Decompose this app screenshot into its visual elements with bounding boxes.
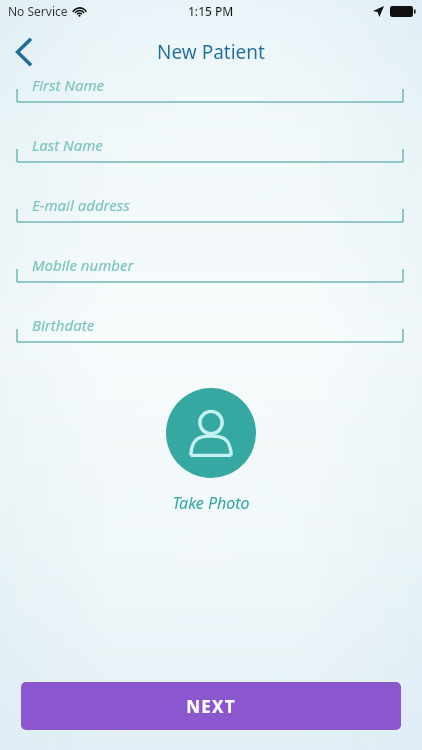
staticText: New Patient [157,39,265,65]
button[interactable]: First Name [0,63,422,123]
staticText: E-mail address [32,195,130,215]
button[interactable]: Back [0,29,46,75]
staticText: Mobile number [32,255,134,275]
staticText: Take Photo [172,492,250,514]
staticText: Birthdate [32,315,95,335]
staticText: No Service [8,3,68,19]
button[interactable]: Last Name [0,123,422,183]
button[interactable]: Mobile number [0,243,422,303]
button[interactable]: NEXT [21,682,401,730]
staticText: 1:15 PM [188,3,234,19]
button[interactable]: Birthdate [0,303,422,363]
staticText: Last Name [32,135,103,155]
staticText: First Name [32,75,105,95]
button[interactable]: Take Photo [166,388,256,478]
button[interactable]: E-mail address [0,183,422,243]
staticText: NEXT [186,695,236,718]
